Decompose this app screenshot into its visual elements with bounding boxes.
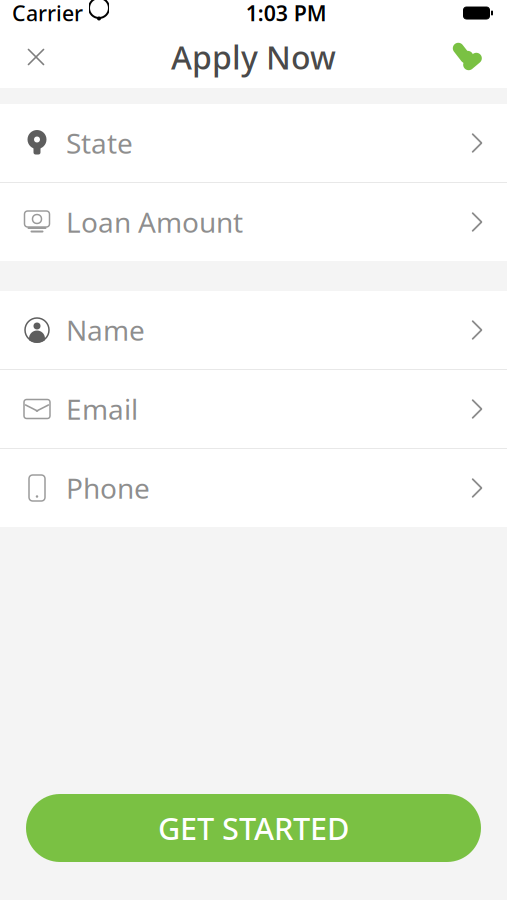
staticText: Name xyxy=(66,311,145,349)
staticText: GET STARTED xyxy=(158,808,349,848)
staticText: Carrier xyxy=(12,0,83,27)
button[interactable]: Name xyxy=(0,291,507,369)
staticText: Phone xyxy=(66,469,150,507)
staticText: 1:03 PM xyxy=(246,0,327,27)
button[interactable]: Close xyxy=(8,29,64,85)
staticText: Apply Now xyxy=(171,36,336,78)
staticText: Email xyxy=(66,390,138,428)
button[interactable]: Loan Amount xyxy=(0,183,507,261)
button[interactable]: Email xyxy=(0,370,507,448)
button[interactable]: State xyxy=(0,104,507,182)
staticText: Loan Amount xyxy=(66,203,243,241)
button[interactable]: GET STARTED xyxy=(26,794,481,862)
button[interactable]: Phone xyxy=(0,449,507,527)
button[interactable]: Call xyxy=(439,29,495,85)
staticText: State xyxy=(66,124,133,162)
